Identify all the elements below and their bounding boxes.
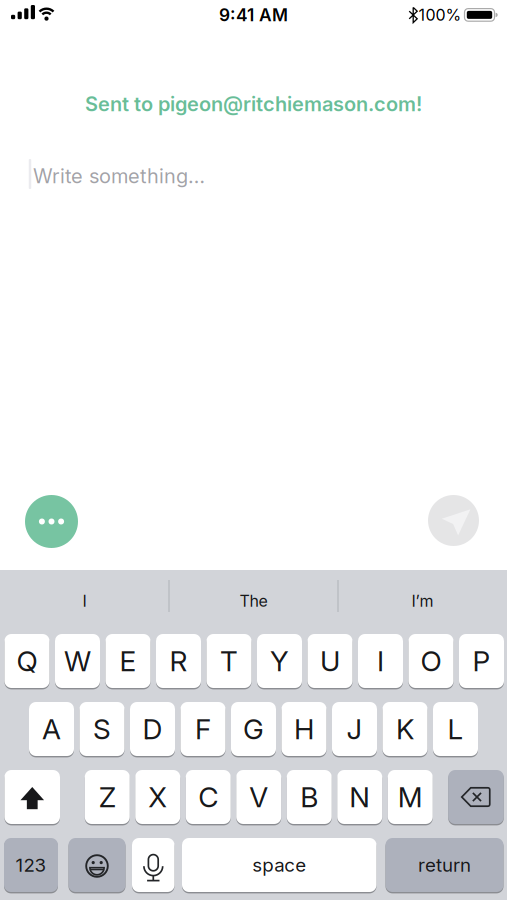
staticText: Y xyxy=(270,644,289,677)
staticText: X xyxy=(148,780,167,813)
staticText: I xyxy=(82,592,86,610)
button[interactable]: U xyxy=(307,634,352,688)
button[interactable]: Shift xyxy=(4,770,60,824)
staticText: 100% xyxy=(418,6,461,24)
button[interactable]: P xyxy=(459,634,504,688)
staticText: P xyxy=(472,644,490,677)
staticText: I’m xyxy=(411,592,433,610)
staticText: B xyxy=(300,780,318,813)
button[interactable]: T xyxy=(206,634,251,688)
button[interactable]: A xyxy=(29,702,74,756)
staticText: H xyxy=(294,712,314,745)
button[interactable]: C xyxy=(186,770,231,824)
staticText: Z xyxy=(99,780,116,813)
staticText: E xyxy=(119,644,136,677)
staticText: R xyxy=(169,644,187,677)
button[interactable]: W xyxy=(55,634,100,688)
staticText: return xyxy=(418,854,471,876)
button[interactable]: K xyxy=(382,702,427,756)
staticText: G xyxy=(243,712,264,745)
staticText: A xyxy=(42,712,61,745)
staticText: The xyxy=(239,592,267,610)
staticText: I xyxy=(377,644,384,677)
button[interactable]: I xyxy=(358,634,403,688)
staticText: T xyxy=(220,644,238,677)
staticText: Sent to pigeon@ritchiemason.com! xyxy=(85,92,422,116)
button[interactable]: I’m xyxy=(342,575,502,627)
button[interactable]: G xyxy=(231,702,276,756)
button[interactable]: 123 xyxy=(4,838,58,892)
staticText: M xyxy=(398,780,423,813)
button[interactable]: return xyxy=(385,838,503,892)
staticText: L xyxy=(447,712,463,745)
button[interactable]: X xyxy=(135,770,180,824)
button[interactable]: D xyxy=(130,702,175,756)
button[interactable]: S xyxy=(79,702,124,756)
button[interactable]: M xyxy=(388,770,433,824)
staticText: D xyxy=(142,712,162,745)
button[interactable]: Emoji xyxy=(68,838,125,892)
button[interactable]: Send xyxy=(428,495,479,546)
staticText: K xyxy=(396,712,414,745)
button[interactable]: O xyxy=(408,634,453,688)
button[interactable]: Z xyxy=(85,770,130,824)
button[interactable]: R xyxy=(156,634,201,688)
button[interactable]: J xyxy=(332,702,377,756)
button[interactable]: Y xyxy=(257,634,302,688)
button[interactable]: I xyxy=(4,575,164,627)
staticText: 9:41 AM xyxy=(219,5,288,25)
button[interactable]: V xyxy=(236,770,281,824)
staticText: J xyxy=(346,712,362,745)
staticText: O xyxy=(420,644,441,677)
staticText: space xyxy=(252,854,306,876)
staticText: Q xyxy=(16,644,37,677)
staticText: S xyxy=(93,712,111,745)
button[interactable]: N xyxy=(337,770,382,824)
button[interactable]: L xyxy=(433,702,478,756)
staticText: C xyxy=(198,780,218,813)
button[interactable]: The xyxy=(173,575,333,627)
staticText: F xyxy=(195,712,211,745)
staticText: 123 xyxy=(15,854,46,876)
button[interactable]: space xyxy=(182,838,376,892)
staticText: W xyxy=(64,644,91,677)
staticText: Write something… xyxy=(33,164,205,188)
staticText: V xyxy=(249,780,268,813)
button[interactable]: Delete xyxy=(448,770,504,824)
button[interactable]: H xyxy=(281,702,326,756)
button[interactable]: E xyxy=(105,634,150,688)
button[interactable]: B xyxy=(287,770,332,824)
button[interactable]: F xyxy=(180,702,225,756)
button[interactable]: More options xyxy=(25,495,78,548)
staticText: N xyxy=(349,780,370,813)
staticText: U xyxy=(320,644,340,677)
button[interactable]: Q xyxy=(4,634,49,688)
button[interactable]: Dictate xyxy=(132,838,174,892)
